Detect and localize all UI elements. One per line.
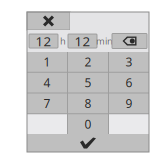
button[interactable]: 12 bbox=[29, 34, 58, 48]
button[interactable]: Confirm bbox=[27, 134, 149, 152]
staticText: 5 bbox=[84, 75, 91, 91]
staticText: min bbox=[96, 35, 113, 47]
button[interactable]: 3 bbox=[109, 52, 149, 72]
button[interactable]: 5 bbox=[68, 73, 108, 93]
staticText: 12 bbox=[74, 32, 90, 50]
button[interactable]: 6 bbox=[109, 73, 149, 93]
staticText: 0 bbox=[84, 116, 91, 132]
staticText: 12 bbox=[35, 32, 51, 50]
button[interactable]: Close bbox=[27, 12, 70, 30]
staticText: 1 bbox=[43, 54, 50, 70]
button[interactable]: 8 bbox=[68, 93, 108, 113]
staticText: 6 bbox=[125, 75, 132, 91]
staticText: 8 bbox=[84, 95, 91, 111]
staticText: h bbox=[60, 35, 66, 47]
button[interactable]: 12 bbox=[68, 34, 97, 48]
button[interactable]: 4 bbox=[27, 73, 67, 93]
button[interactable]: 9 bbox=[109, 93, 149, 113]
button[interactable]: 2 bbox=[68, 52, 108, 72]
button[interactable]: 7 bbox=[27, 93, 67, 113]
staticText: 9 bbox=[125, 95, 132, 111]
button[interactable]: Backspace bbox=[112, 33, 147, 48]
staticText: 7 bbox=[43, 95, 50, 111]
button[interactable]: 0 bbox=[68, 114, 108, 134]
staticText: 3 bbox=[125, 54, 132, 70]
button[interactable]: 1 bbox=[27, 52, 67, 72]
staticText: 2 bbox=[84, 54, 91, 70]
staticText: 4 bbox=[43, 75, 50, 91]
